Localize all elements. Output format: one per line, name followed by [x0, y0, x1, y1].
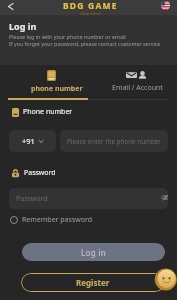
staticText: Password	[24, 168, 56, 178]
button[interactable]: Email / Account	[97, 66, 177, 93]
button[interactable]: Password	[9, 188, 168, 209]
staticText: phone number	[31, 84, 83, 94]
button[interactable]: Show password	[161, 193, 168, 202]
staticText: Email / Account	[112, 83, 163, 93]
staticText: Register	[76, 277, 110, 288]
button[interactable]: Language	[161, 1, 170, 10]
staticText: Log in	[81, 247, 107, 258]
button[interactable]: +91	[9, 130, 56, 152]
button[interactable]: Customer service	[154, 267, 177, 292]
staticText: BDG GAME	[63, 0, 118, 12]
staticText: Please log in with your phone number or …	[9, 33, 126, 40]
button[interactable]: Back	[4, 0, 17, 13]
staticText: Please enter the phone number	[67, 137, 161, 146]
staticText: Password	[16, 194, 48, 204]
staticText: If you forget your password, please cont…	[9, 40, 161, 47]
staticText: +91	[22, 136, 35, 146]
button[interactable]: Please enter the phone number	[60, 130, 168, 152]
button[interactable]: Register	[21, 273, 165, 292]
button[interactable]: Log in	[22, 243, 165, 261]
button[interactable]: phone number	[16, 66, 97, 94]
staticText: Phone number	[23, 107, 73, 117]
staticText: official website	[80, 12, 101, 15]
button[interactable]: Remember password	[10, 215, 93, 225]
staticText: Remember password	[22, 215, 93, 225]
staticText: Log in	[9, 20, 37, 32]
